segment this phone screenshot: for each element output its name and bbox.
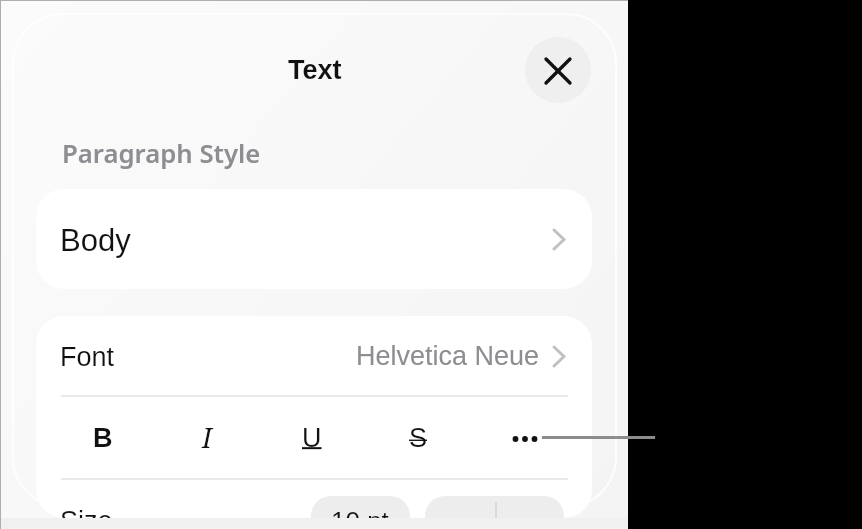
button[interactable]: Font [36, 316, 592, 396]
staticText: Size [60, 506, 113, 518]
button[interactable]: B [50, 396, 155, 479]
button[interactable]: Close [525, 37, 591, 103]
button[interactable]: I [154, 396, 259, 479]
button[interactable]: More formatting options [472, 396, 577, 479]
staticText: Text [288, 55, 342, 85]
staticText: 10 pt [331, 506, 389, 518]
staticText: S [409, 423, 428, 453]
staticText: Font [60, 342, 115, 372]
button[interactable]: S [366, 396, 471, 479]
staticText: I [202, 419, 212, 456]
staticText: Paragraph Style [62, 136, 261, 171]
button[interactable]: 10 pt [311, 496, 410, 518]
button[interactable]: U [259, 396, 364, 479]
staticText: Helvetica Neue [356, 341, 540, 371]
staticText: Body [60, 223, 131, 258]
button[interactable]: Body [36, 189, 592, 289]
staticText: B [93, 423, 113, 453]
button[interactable]: Decrease or increase size [425, 496, 564, 518]
staticText: U [302, 423, 322, 453]
